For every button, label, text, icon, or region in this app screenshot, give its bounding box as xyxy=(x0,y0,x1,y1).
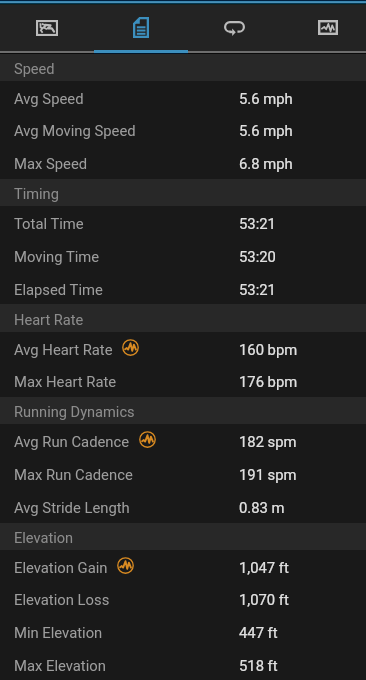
staticText: Total Time xyxy=(14,215,84,232)
staticText: Max Speed xyxy=(14,155,88,172)
staticText: Avg Heart Rate xyxy=(14,341,113,358)
staticText: Elevation xyxy=(14,529,74,546)
staticText: 191 spm xyxy=(239,466,297,483)
button[interactable]: Avg Speed xyxy=(0,81,366,113)
staticText: Heart Rate xyxy=(14,311,84,328)
button[interactable]: Details xyxy=(94,5,188,54)
button[interactable]: Max Elevation xyxy=(0,648,366,680)
staticText: 1,070 ft xyxy=(239,591,289,608)
staticText: Moving Time xyxy=(14,248,100,265)
button[interactable]: Min Elevation xyxy=(0,615,366,648)
staticText: Timing xyxy=(14,185,59,202)
staticText: Avg Speed xyxy=(14,90,84,107)
button[interactable]: Total Time xyxy=(0,206,366,239)
staticText: 176 bpm xyxy=(239,373,298,390)
staticText: 6.8 mph xyxy=(239,155,293,172)
staticText: 160 bpm xyxy=(239,341,298,358)
button[interactable]: Avg Heart Rate xyxy=(0,332,366,364)
button[interactable]: Max Run Cadence xyxy=(0,457,366,490)
staticText: 5.6 mph xyxy=(239,90,293,107)
staticText: Elevation Loss xyxy=(14,591,110,608)
button[interactable]: Moving Time xyxy=(0,239,366,272)
button[interactable]: Max Heart Rate xyxy=(0,364,366,397)
staticText: Running Dynamics xyxy=(14,403,135,420)
staticText: Elevation Gain xyxy=(14,559,108,576)
button[interactable]: Max Speed xyxy=(0,146,366,179)
staticText: 53:21 xyxy=(239,281,276,298)
staticText: Elapsed Time xyxy=(14,281,103,298)
button[interactable]: Avg Stride Length xyxy=(0,490,366,523)
button[interactable]: Laps xyxy=(187,5,281,54)
staticText: 53:20 xyxy=(239,248,276,265)
staticText: 518 ft xyxy=(239,657,278,674)
staticText: 182 spm xyxy=(239,433,297,450)
staticText: 53:21 xyxy=(239,215,276,232)
staticText: Avg Moving Speed xyxy=(14,122,136,139)
staticText: 5.6 mph xyxy=(239,122,293,139)
button[interactable]: Elevation Gain xyxy=(0,550,366,582)
staticText: Max Elevation xyxy=(14,657,106,674)
staticText: 1,047 ft xyxy=(239,559,289,576)
button[interactable]: Elevation Loss xyxy=(0,582,366,615)
staticText: Min Elevation xyxy=(14,624,103,641)
button[interactable]: Charts xyxy=(281,5,366,54)
staticText: 0.83 m xyxy=(239,499,285,516)
staticText: 447 ft xyxy=(239,624,278,641)
staticText: Avg Stride Length xyxy=(14,499,130,516)
staticText: Max Run Cadence xyxy=(14,466,133,483)
button[interactable]: Avg Run Cadence xyxy=(0,424,366,457)
staticText: Max Heart Rate xyxy=(14,373,117,390)
button[interactable]: Elapsed Time xyxy=(0,272,366,304)
staticText: Speed xyxy=(14,60,55,77)
button[interactable]: Avg Moving Speed xyxy=(0,113,366,146)
button[interactable]: Map xyxy=(0,5,94,54)
staticText: Avg Run Cadence xyxy=(14,433,130,450)
